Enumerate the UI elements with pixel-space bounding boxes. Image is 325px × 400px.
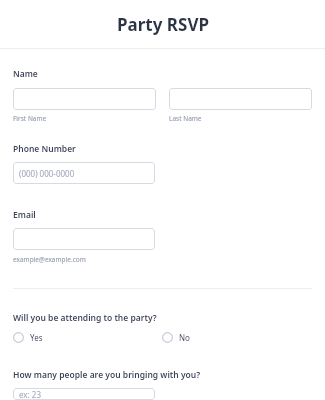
button[interactable]: No [162,332,312,343]
staticText: (000) 000-0000 [19,168,75,179]
button[interactable] [13,88,156,110]
staticText: ex: 23 [19,389,41,400]
staticText: Phone Number [13,143,76,155]
button[interactable]: (000) 000-0000 [13,162,155,184]
button[interactable]: Yes [13,332,162,343]
staticText: Yes [30,332,43,343]
staticText: Last Name [169,114,202,123]
staticText: Name [13,68,38,80]
staticText: example@example.com [13,255,86,264]
staticText: How many people are you bringing with yo… [13,369,201,381]
staticText: Party RSVP [117,13,209,36]
staticText: No [179,332,190,343]
button[interactable]: ex: 23 [13,388,155,400]
staticText: Will you be attending to the party? [13,312,157,324]
staticText: First Name [13,114,47,123]
staticText: Email [13,209,36,221]
button[interactable] [13,228,155,250]
button[interactable] [169,88,312,110]
